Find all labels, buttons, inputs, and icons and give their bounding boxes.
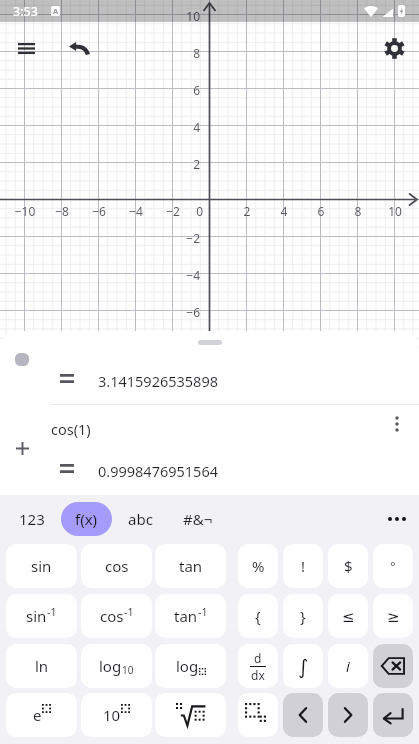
staticText: 0: [188, 203, 203, 219]
button[interactable]: Nth root: [155, 693, 226, 737]
staticText: °: [390, 557, 396, 575]
staticText: }: [300, 606, 306, 626]
button[interactable]: log: [155, 644, 226, 688]
button[interactable]: abc: [114, 502, 167, 536]
staticText: cos: [100, 606, 124, 626]
button[interactable]: ∫: [283, 644, 323, 688]
staticText: abc: [128, 509, 153, 529]
staticText: log: [99, 656, 122, 676]
staticText: −2: [175, 230, 200, 246]
button[interactable]: Backspace: [373, 644, 413, 688]
staticText: ∫: [298, 655, 309, 678]
button[interactable]: Undo: [63, 32, 95, 64]
staticText: $: [344, 556, 353, 576]
staticText: dx: [251, 667, 265, 683]
button[interactable]: Derivative: [238, 644, 278, 688]
button[interactable]: Enter: [373, 693, 413, 737]
button[interactable]: e: [6, 693, 77, 737]
staticText: 10: [103, 705, 121, 725]
staticText: 4: [175, 119, 200, 135]
button[interactable]: More: [381, 503, 413, 535]
staticText: 4: [269, 203, 299, 219]
staticText: 8: [343, 203, 373, 219]
button[interactable]: cos: [81, 594, 152, 638]
button[interactable]: Settings: [378, 32, 410, 64]
button[interactable]: Menu: [10, 32, 42, 64]
button[interactable]: cos: [81, 544, 152, 588]
button[interactable]: Left: [283, 693, 323, 737]
button[interactable]: f(x): [61, 502, 112, 536]
staticText: tan: [179, 556, 203, 576]
button[interactable]: ≥: [373, 594, 413, 638]
staticText: #&¬: [183, 509, 213, 529]
button[interactable]: sin: [6, 594, 77, 638]
staticText: 2: [232, 203, 262, 219]
button[interactable]: !: [283, 544, 323, 588]
button[interactable]: Colour: [15, 353, 29, 366]
button[interactable]: log: [81, 644, 152, 688]
staticText: −8: [47, 203, 77, 219]
button[interactable]: Right: [328, 693, 368, 737]
staticText: %: [252, 556, 265, 576]
staticText: 6: [306, 203, 336, 219]
staticText: -1: [124, 605, 134, 619]
staticText: A: [53, 6, 59, 16]
staticText: −4: [175, 267, 200, 283]
button[interactable]: ln: [6, 644, 77, 688]
staticText: sin: [31, 556, 52, 576]
staticText: −4: [121, 203, 151, 219]
button[interactable]: Add expression: [10, 436, 35, 461]
staticText: ≤: [342, 608, 355, 625]
staticText: log: [176, 656, 199, 676]
button[interactable]: #&¬: [169, 502, 227, 536]
staticText: −10: [10, 203, 40, 219]
staticText: sin: [26, 606, 47, 626]
staticText: d: [254, 650, 262, 666]
staticText: 10: [175, 8, 200, 24]
button[interactable]: ≤: [328, 594, 368, 638]
staticText: i: [346, 656, 350, 676]
staticText: -1: [198, 605, 208, 619]
staticText: 3.1415926535898: [98, 371, 219, 391]
staticText: 10: [380, 203, 410, 219]
staticText: f(x): [75, 509, 98, 529]
staticText: -1: [47, 605, 57, 619]
staticText: cos(1): [51, 419, 91, 439]
button[interactable]: 123: [5, 502, 59, 536]
staticText: !: [301, 556, 306, 576]
button[interactable]: °: [373, 544, 413, 588]
button[interactable]: i: [328, 644, 368, 688]
staticText: −6: [84, 203, 114, 219]
button[interactable]: }: [283, 594, 323, 638]
button[interactable]: tan: [155, 544, 226, 588]
button[interactable]: %: [238, 544, 278, 588]
button[interactable]: More options: [384, 411, 410, 437]
staticText: {: [255, 606, 261, 626]
button[interactable]: $: [328, 544, 368, 588]
staticText: 10: [122, 663, 134, 677]
staticText: 0.9998476951564: [98, 461, 219, 481]
button[interactable]: {: [238, 594, 278, 638]
button[interactable]: 10: [81, 693, 152, 737]
staticText: ln: [35, 656, 49, 676]
button[interactable]: sin: [6, 544, 77, 588]
staticText: 8: [175, 45, 200, 61]
staticText: 2: [175, 156, 200, 172]
staticText: −6: [175, 304, 200, 320]
button[interactable]: Subscript: [238, 693, 278, 737]
staticText: −2: [158, 203, 188, 219]
staticText: e: [33, 705, 42, 725]
staticText: 3:53: [13, 3, 38, 20]
staticText: 6: [175, 82, 200, 98]
staticText: ≥: [387, 608, 400, 625]
staticText: 123: [19, 509, 45, 529]
button[interactable]: tan: [155, 594, 226, 638]
staticText: tan: [174, 606, 198, 626]
staticText: cos: [105, 556, 129, 576]
